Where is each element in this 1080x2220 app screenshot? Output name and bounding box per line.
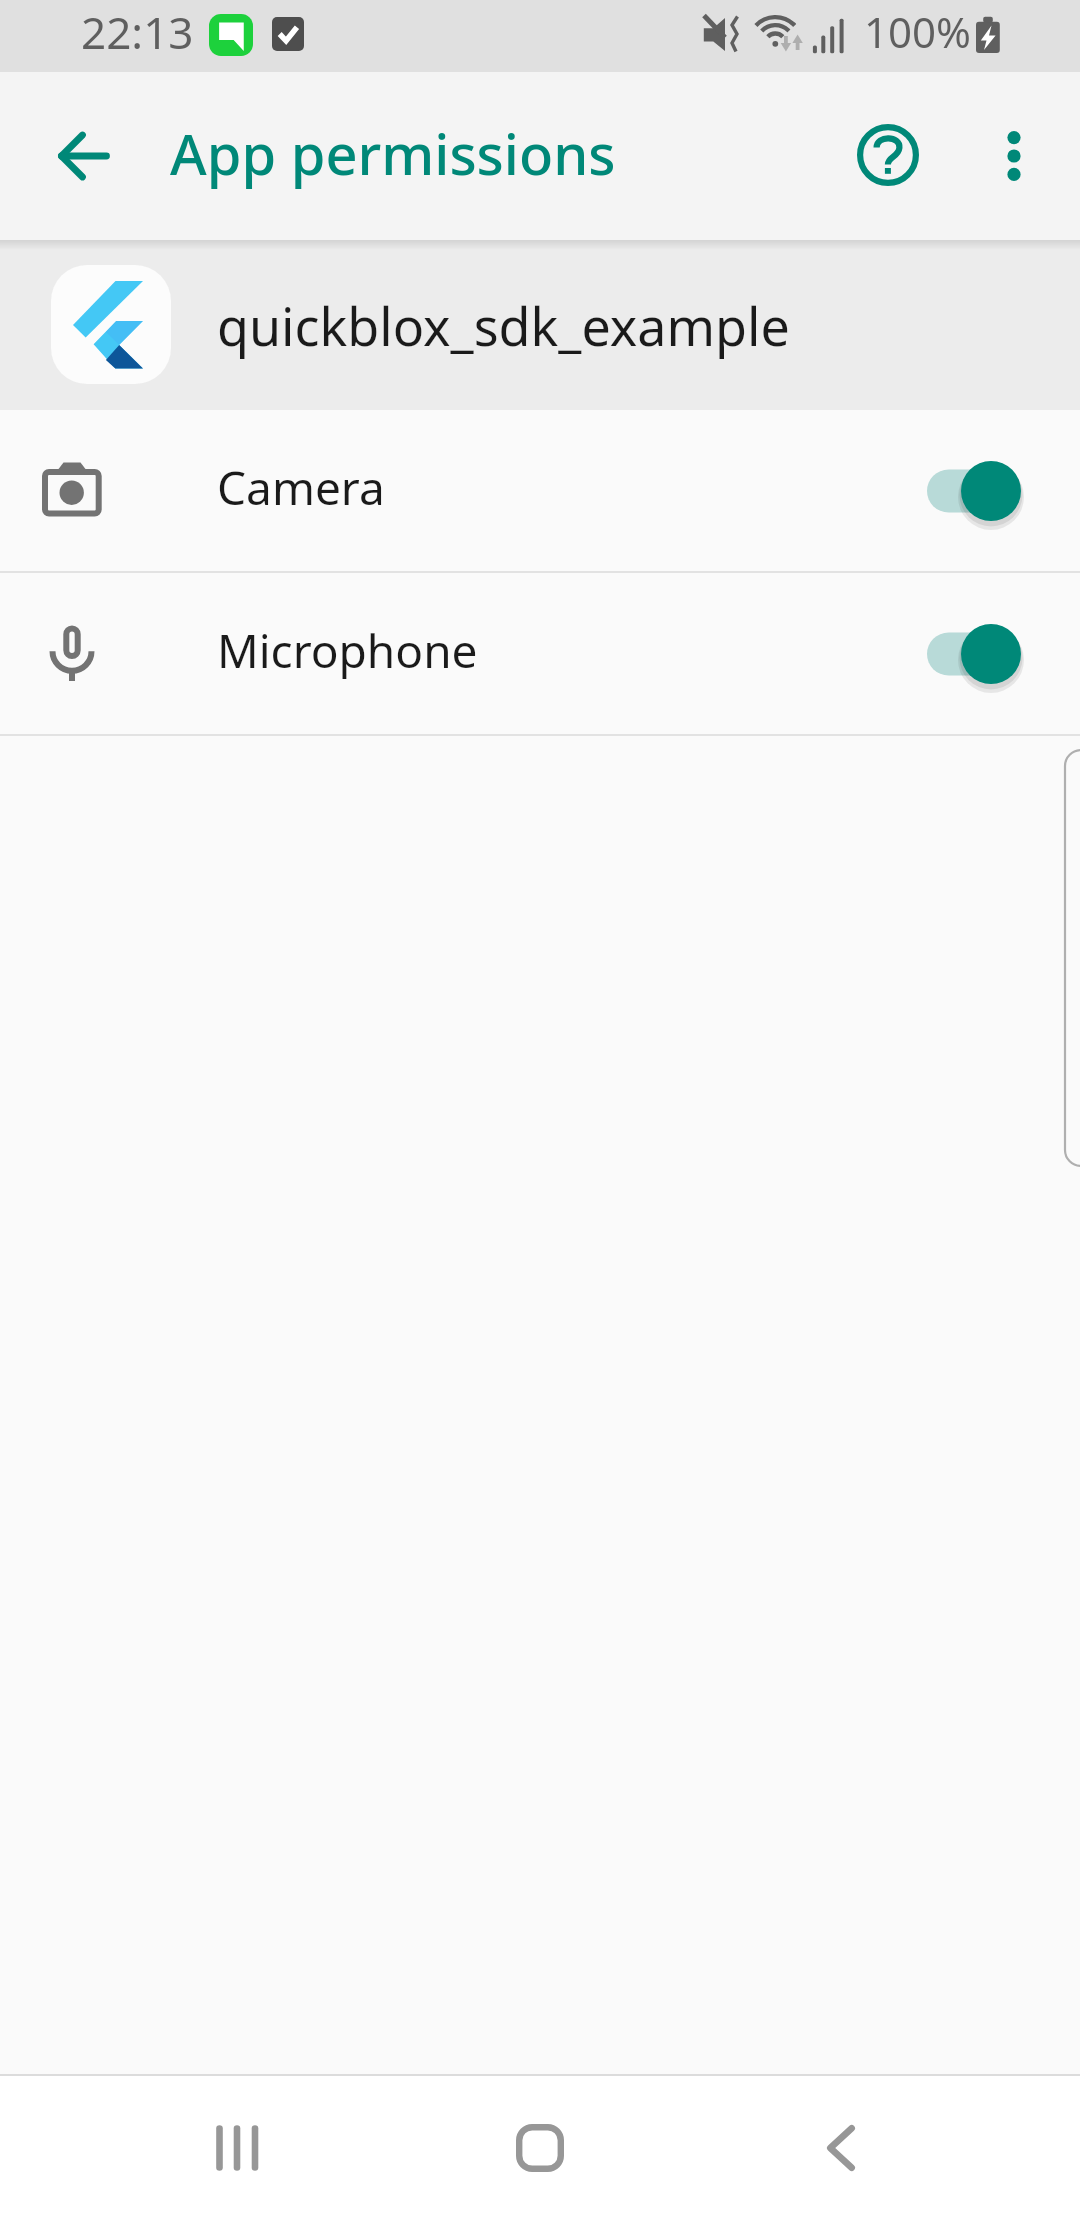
staticText: Camera bbox=[217, 456, 385, 519]
button[interactable]: Navigate up bbox=[0, 72, 168, 240]
button[interactable]: Home bbox=[460, 2098, 620, 2198]
button[interactable]: Camera permission toggle bbox=[912, 441, 1036, 541]
button[interactable]: Microphone permission toggle bbox=[912, 604, 1036, 704]
button[interactable]: quickblox_sdk_example bbox=[0, 240, 1080, 410]
button[interactable]: Camera bbox=[0, 410, 1080, 571]
button[interactable]: Help bbox=[818, 85, 958, 225]
button[interactable]: Recent apps bbox=[160, 2098, 320, 2198]
staticText: 100% bbox=[864, 3, 971, 60]
staticText: quickblox_sdk_example bbox=[217, 290, 790, 361]
button[interactable]: Microphone bbox=[0, 573, 1080, 734]
button[interactable]: More options bbox=[958, 115, 1070, 197]
staticText: 22:13 bbox=[81, 2, 194, 62]
staticText: Microphone bbox=[217, 619, 478, 682]
button[interactable]: Back bbox=[761, 2098, 921, 2198]
staticText: App permissions bbox=[170, 115, 616, 191]
